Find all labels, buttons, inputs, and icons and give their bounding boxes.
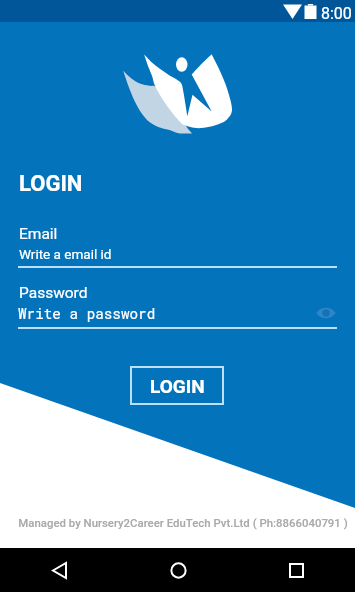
- button[interactable]: LOGIN: [130, 366, 224, 405]
- staticText: Managed by Nursery2Career EduTech Pvt.Lt…: [18, 516, 348, 529]
- staticText: Write a email id: [19, 246, 112, 262]
- button[interactable]: Back: [0, 548, 119, 592]
- staticText: Write a password: [18, 304, 156, 323]
- button[interactable]: Show password: [313, 300, 339, 326]
- staticText: LOGIN: [150, 375, 205, 397]
- staticText: Email: [19, 225, 58, 243]
- button[interactable]: Recent apps: [237, 548, 355, 592]
- staticText: 8:00: [321, 4, 352, 23]
- staticText: LOGIN: [19, 171, 83, 197]
- staticText: Password: [19, 284, 88, 302]
- button[interactable]: Home: [119, 548, 237, 592]
